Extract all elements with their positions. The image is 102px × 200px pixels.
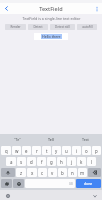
button[interactable]: Text (68, 134, 102, 145)
staticText: g (50, 159, 53, 165)
button[interactable]: j (67, 157, 76, 166)
staticText: b (61, 170, 64, 176)
button[interactable]: v (48, 168, 57, 177)
button[interactable]: d (27, 157, 36, 166)
staticText: "Te" (14, 137, 21, 142)
staticText: k (80, 159, 83, 165)
button[interactable]: u (62, 146, 71, 155)
button[interactable]: k (77, 157, 86, 166)
button[interactable]: h (57, 157, 66, 166)
staticText: x (31, 170, 34, 176)
staticText: autoFill (82, 25, 93, 29)
button[interactable]: m (78, 168, 87, 177)
button[interactable]: Back (0, 3, 13, 14)
button[interactable]: c (38, 168, 47, 177)
button[interactable]: Detect (28, 24, 48, 30)
button[interactable]: b (58, 168, 67, 177)
staticText: f (41, 159, 43, 165)
button[interactable]: r (32, 146, 41, 155)
button[interactable]: n (68, 168, 77, 177)
button[interactable]: z (16, 168, 26, 177)
staticText: l (91, 159, 93, 165)
button[interactable]: Symbols (1, 179, 12, 188)
button[interactable]: a (6, 157, 16, 166)
staticText: TextField is a single-line text editor (22, 16, 81, 21)
button[interactable]: Backspace (88, 168, 101, 177)
staticText: z (20, 170, 23, 176)
button[interactable]: l (87, 157, 96, 166)
button[interactable]: Tell (34, 134, 68, 145)
button[interactable]: i (72, 146, 81, 155)
button[interactable]: q (1, 146, 11, 155)
button[interactable]: f (37, 157, 46, 166)
button[interactable]: autoFill (77, 24, 97, 30)
staticText: Hello there (42, 34, 61, 39)
staticText: Detect (33, 25, 43, 29)
button[interactable]: Space (25, 179, 75, 188)
button[interactable]: t (42, 146, 51, 155)
staticText: TextField (39, 5, 63, 12)
button[interactable]: w (12, 146, 21, 155)
button[interactable]: Change keyboard (4, 192, 11, 199)
staticText: a (10, 159, 13, 165)
staticText: m (80, 170, 85, 176)
staticText: Detect still (55, 25, 70, 29)
staticText: r (36, 148, 38, 154)
button[interactable]: Detect still (50, 24, 75, 30)
button[interactable]: Shift (1, 168, 15, 177)
staticText: d (30, 159, 33, 165)
staticText: done (84, 181, 93, 186)
staticText: GB (69, 182, 73, 186)
button[interactable]: "Te" (0, 134, 34, 145)
staticText: Render (10, 25, 21, 29)
button[interactable]: o (82, 146, 91, 155)
staticText: s (20, 159, 23, 165)
button[interactable]: Hide keyboard (91, 192, 98, 199)
staticText: y (55, 148, 58, 154)
staticText: e (25, 148, 28, 154)
button[interactable]: More options (91, 3, 102, 14)
staticText: j (71, 159, 73, 165)
staticText: q (5, 148, 8, 154)
button[interactable]: Hello there (34, 33, 68, 40)
staticText: p (95, 148, 98, 154)
button[interactable]: p (92, 146, 101, 155)
staticText: w (15, 148, 19, 154)
staticText: u (65, 148, 68, 154)
staticText: i (76, 148, 78, 154)
button[interactable]: x (27, 168, 37, 177)
button[interactable]: Render (5, 24, 26, 30)
staticText: Text (82, 137, 89, 142)
button[interactable]: done (76, 179, 101, 188)
staticText: Tell (48, 137, 54, 142)
staticText: t (46, 148, 48, 154)
staticText: n (71, 170, 74, 176)
button[interactable]: s (17, 157, 26, 166)
button[interactable]: g (47, 157, 56, 166)
staticText: h (60, 159, 63, 165)
button[interactable]: Emoji (13, 179, 24, 188)
button[interactable]: e (22, 146, 31, 155)
staticText: v (51, 170, 54, 176)
button[interactable]: y (52, 146, 61, 155)
staticText: o (85, 148, 88, 154)
staticText: c (41, 170, 44, 176)
